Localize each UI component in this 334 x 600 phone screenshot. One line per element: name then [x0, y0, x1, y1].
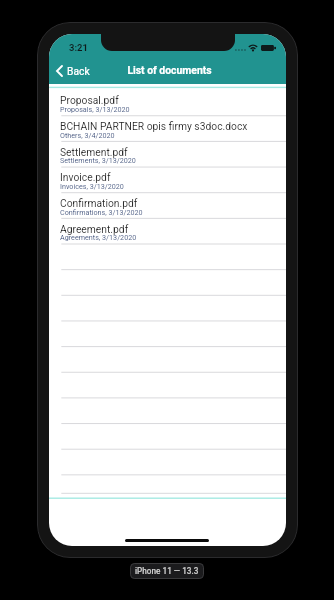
button[interactable] [49, 372, 286, 398]
button[interactable] [49, 192, 286, 218]
button[interactable] [49, 397, 286, 423]
staticText: Back [67, 65, 90, 77]
button[interactable] [49, 90, 286, 116]
staticText: Agreement.pdf [60, 223, 129, 235]
staticText: Confirmations, 3/13/2020 [60, 208, 143, 216]
other: Back [56, 65, 63, 77]
button[interactable] [49, 115, 286, 141]
staticText: Settlements, 3/13/2020 [60, 156, 136, 164]
staticText: List of documents [51, 64, 286, 76]
button[interactable] [49, 320, 286, 346]
staticText: Confirmation.pdf [60, 197, 138, 209]
staticText: Proposal.pdf [60, 94, 119, 106]
staticText: Settlement.pdf [60, 146, 128, 158]
button[interactable] [49, 449, 286, 475]
button[interactable] [49, 218, 286, 244]
staticText: BCHAIN PARTNER opis firmy s3doc.docx [60, 120, 248, 132]
button[interactable] [49, 346, 286, 372]
staticText: 3:21 [69, 42, 88, 53]
staticText: Invoice.pdf [60, 171, 111, 183]
button[interactable] [49, 423, 286, 449]
button[interactable] [49, 141, 286, 167]
staticText: Others, 3/4/2020 [60, 131, 115, 139]
button[interactable] [49, 167, 286, 193]
staticText: iPhone 11 — 13.3 [135, 566, 199, 576]
button[interactable] [49, 244, 286, 270]
button[interactable] [49, 269, 286, 295]
staticText: Agreements, 3/13/2020 [60, 233, 137, 241]
button[interactable] [49, 295, 286, 321]
button[interactable]: Back [49, 60, 98, 81]
staticText: Invoices, 3/13/2020 [60, 182, 124, 190]
staticText: Proposals, 3/13/2020 [60, 105, 130, 113]
